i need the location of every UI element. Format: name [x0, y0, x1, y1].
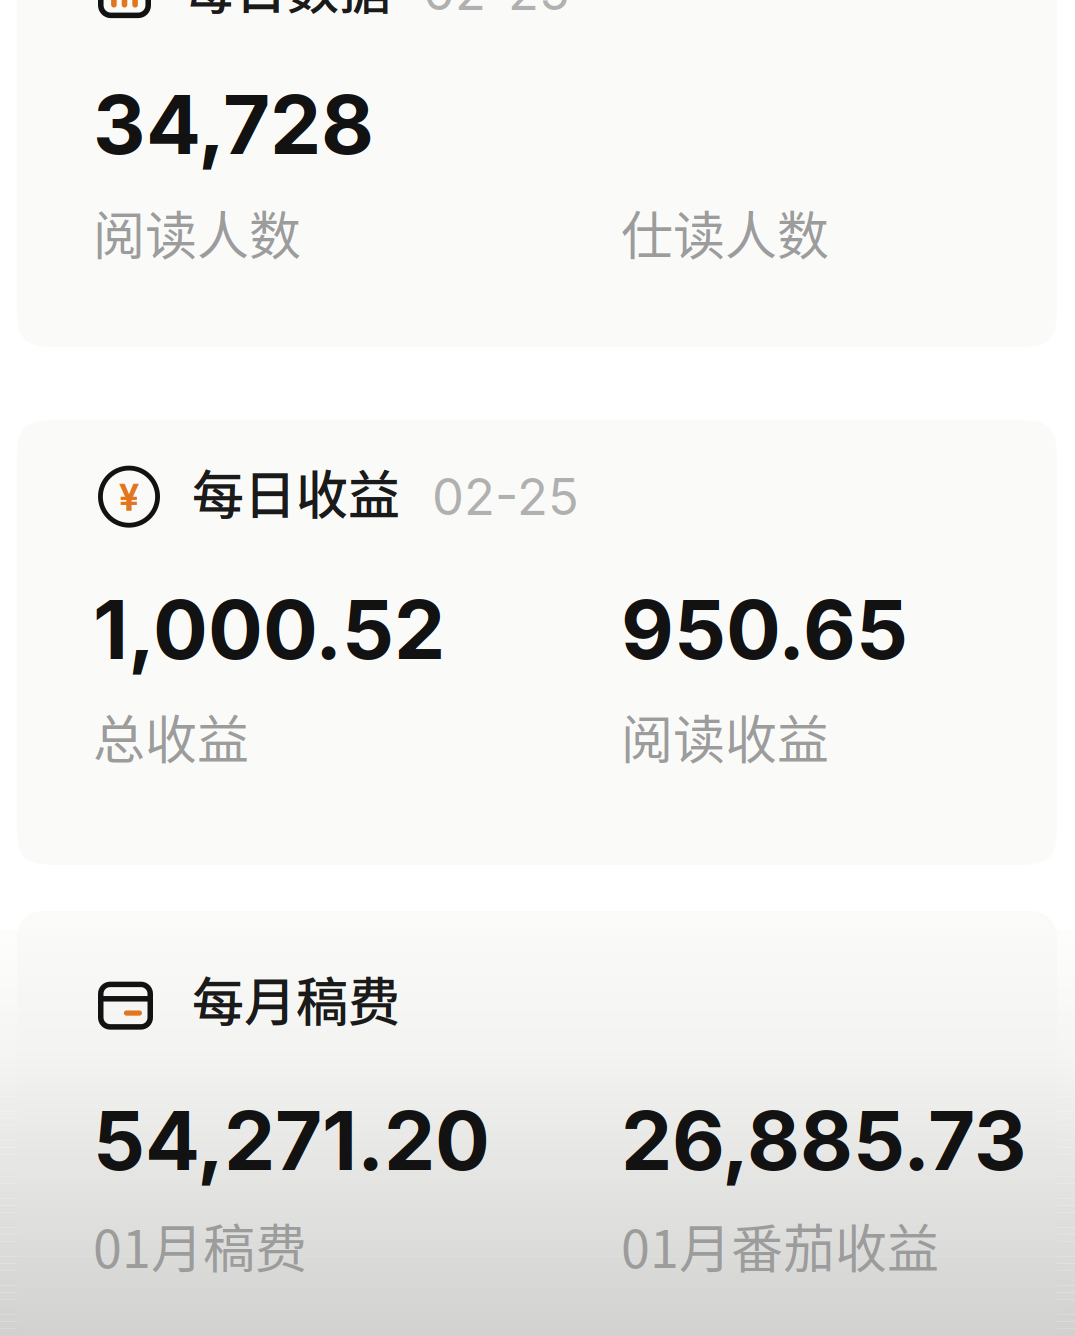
staticText: 仕读人数 — [621, 195, 829, 270]
button[interactable]: 每月稿费 — [17, 911, 1057, 1336]
staticText: 1,000.52 — [93, 580, 445, 679]
button[interactable]: ¥ — [17, 420, 1057, 865]
staticText: 每日数据 — [183, 0, 391, 24]
staticText: 01月番茄收益 — [621, 1208, 939, 1283]
staticText: ¥ — [119, 476, 139, 520]
staticText: 每日收益 — [192, 454, 400, 529]
staticText: 阅读收益 — [621, 699, 829, 774]
staticText: 34,728 — [93, 75, 374, 174]
staticText: 每月稿费 — [192, 961, 400, 1036]
staticText: 01月稿费 — [93, 1208, 307, 1283]
button[interactable]: 每日数据 — [17, 0, 1057, 347]
staticText: 26,885.73 — [621, 1091, 1027, 1190]
staticText: 总收益 — [93, 699, 249, 774]
staticText: 54,271.20 — [93, 1091, 490, 1190]
staticText: 02-25 — [432, 466, 579, 527]
staticText: 950.65 — [621, 580, 908, 679]
staticText: 02-25 — [423, 0, 570, 22]
staticText: 阅读人数 — [93, 195, 301, 270]
